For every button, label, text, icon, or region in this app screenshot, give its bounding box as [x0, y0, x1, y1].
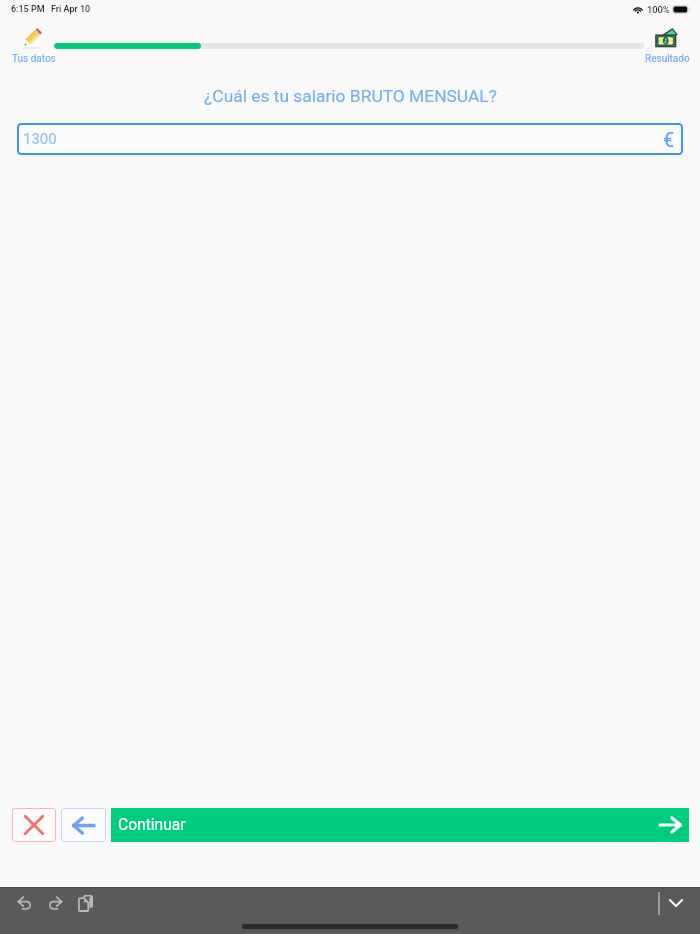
staticText: Resultado	[645, 53, 690, 65]
staticText: ¿Cuál es tu salario BRUTO MENSUAL?	[204, 86, 497, 106]
button[interactable]: Undo	[10, 889, 38, 917]
staticText: 100%	[647, 4, 670, 15]
button[interactable]: Continuar	[111, 808, 689, 842]
staticText: Fri Apr 10	[51, 4, 91, 15]
button[interactable]: Cancelar	[12, 808, 56, 842]
staticText: 1300	[23, 130, 57, 148]
staticText: Tus datos	[12, 53, 56, 65]
button[interactable]: Tus datos	[2, 25, 66, 65]
button[interactable]: Atrás	[61, 808, 106, 842]
button[interactable]: Resultado	[638, 25, 696, 65]
button[interactable]: 1300	[17, 123, 683, 155]
button[interactable]: Hide keyboard	[662, 889, 690, 917]
button[interactable]: Redo	[41, 889, 69, 917]
staticText: Continuar	[118, 816, 186, 834]
staticText: 6:15 PM	[11, 4, 45, 15]
button[interactable]: Paste	[72, 889, 100, 917]
staticText: €	[663, 128, 675, 151]
